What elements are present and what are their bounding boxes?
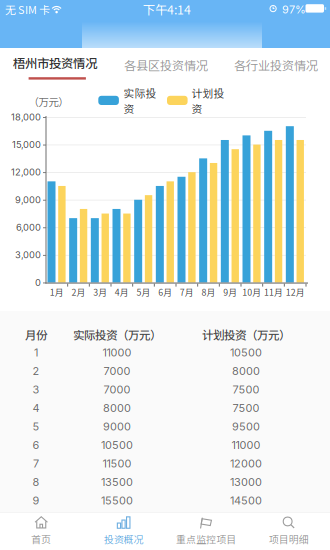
staticText: 各县区投资情况	[124, 56, 208, 74]
staticText: 12月	[286, 286, 305, 298]
staticText: 7	[33, 457, 39, 470]
staticText: 11500	[102, 457, 131, 470]
staticText: 11000	[102, 346, 131, 359]
staticText: 18,000	[11, 111, 41, 123]
staticText: 7500	[232, 383, 259, 396]
staticText: 8	[32, 475, 39, 489]
staticText: 实际投资（万元）	[73, 326, 161, 343]
staticText: 11000	[231, 438, 260, 452]
button[interactable]: 投资概况	[82, 512, 165, 550]
staticText: 9	[32, 494, 39, 507]
button[interactable]: 项目明细	[247, 512, 330, 550]
staticText: 6	[32, 438, 39, 452]
staticText: 13500	[101, 475, 133, 489]
staticText: 1	[34, 346, 38, 359]
staticText: （万元）	[28, 94, 68, 109]
staticText: 6月	[158, 286, 172, 298]
button[interactable]: 各县区投资情况	[111, 48, 221, 82]
staticText: 11月	[264, 286, 283, 298]
staticText: 4月	[115, 286, 129, 298]
staticText: 3	[32, 383, 39, 396]
staticText: 重点监控项目	[176, 532, 236, 546]
staticText: 10月	[242, 286, 261, 298]
staticText: 10500	[101, 438, 133, 452]
staticText: 梧州市投资情况	[13, 54, 97, 72]
staticText: 5月	[136, 286, 150, 298]
staticText: 9500	[232, 420, 260, 433]
staticText: 9,000	[15, 194, 41, 205]
staticText: 15500	[101, 494, 133, 507]
staticText: 8月	[201, 286, 215, 298]
staticText: 8000	[103, 401, 131, 415]
staticText: 投资概况	[104, 532, 144, 546]
staticText: 1月	[50, 286, 64, 298]
staticText: 2月	[71, 286, 85, 298]
staticText: 12,000	[11, 166, 41, 178]
staticText: 无 SIM 卡	[5, 1, 50, 17]
staticText: 7000	[103, 364, 130, 378]
button[interactable]: 首页	[0, 512, 82, 550]
staticText: 0	[35, 277, 41, 288]
staticText: 12000	[230, 457, 262, 470]
staticText: 2	[32, 364, 39, 378]
button[interactable]: 梧州市投资情况	[0, 48, 110, 82]
button[interactable]: 重点监控项目	[165, 512, 247, 550]
staticText: 9月	[223, 286, 237, 298]
staticText: 7500	[232, 401, 259, 415]
staticText: 月份	[25, 326, 47, 343]
staticText: 97%	[282, 3, 306, 16]
staticText: 14500	[230, 494, 262, 507]
staticText: 3月	[93, 286, 107, 298]
staticText: 5	[32, 420, 39, 433]
staticText: 7月	[180, 286, 194, 298]
staticText: 首页	[31, 532, 51, 546]
staticText: 计划投资（万元）	[202, 326, 290, 343]
button[interactable]: 各行业投资情况	[221, 48, 330, 82]
staticText: 10500	[230, 346, 262, 359]
staticText: 各行业投资情况	[234, 56, 318, 74]
staticText: 4	[32, 401, 39, 415]
staticText: 13000	[230, 475, 262, 489]
staticText: 15,000	[12, 139, 41, 150]
staticText: 9000	[103, 420, 131, 433]
staticText: 8000	[232, 364, 260, 378]
staticText: 7000	[103, 383, 130, 396]
staticText: 项目明细	[269, 532, 309, 546]
staticText: 计划投资	[191, 85, 224, 116]
staticText: 3,000	[15, 249, 41, 261]
staticText: 下午4:14	[143, 0, 191, 18]
staticText: 实际投资	[123, 85, 156, 116]
staticText: 6,000	[16, 222, 41, 233]
